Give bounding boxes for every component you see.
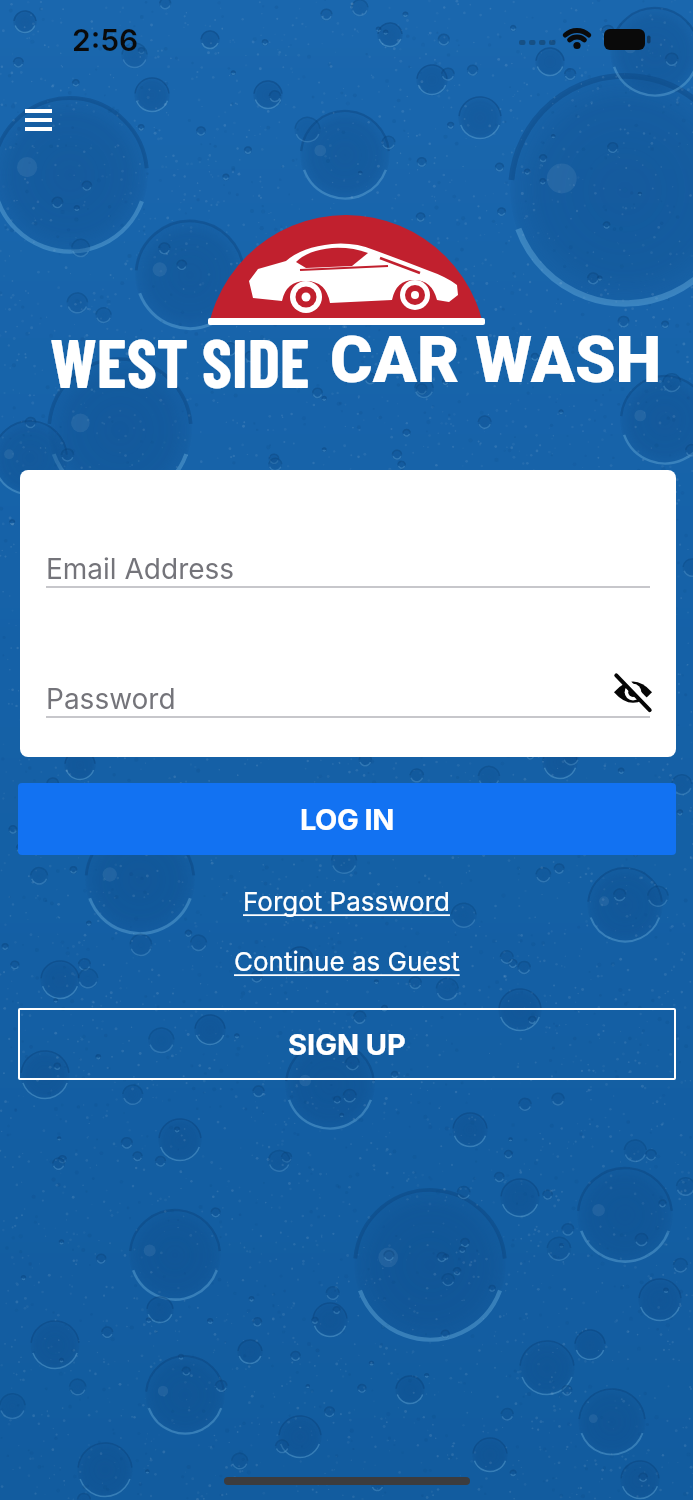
staticText: SIGN UP <box>288 1027 406 1062</box>
staticText: Email Address <box>46 552 235 586</box>
button[interactable] <box>22 104 54 136</box>
staticText: WEST SIDE <box>50 320 310 402</box>
button[interactable] <box>46 658 650 718</box>
button[interactable] <box>606 666 660 714</box>
staticText: Password <box>46 682 176 716</box>
staticText: CAR WASH <box>330 322 662 398</box>
button[interactable] <box>46 528 650 588</box>
button[interactable]: SIGN UP <box>18 1008 676 1080</box>
button[interactable]: Continue as Guest <box>234 946 460 977</box>
staticText: 2:56 <box>72 22 139 58</box>
staticText: Continue as Guest <box>234 946 460 977</box>
button[interactable]: Forgot Password <box>243 886 450 917</box>
staticText: LOG IN <box>300 802 394 837</box>
staticText: Forgot Password <box>243 886 450 917</box>
button[interactable]: LOG IN <box>18 783 676 855</box>
